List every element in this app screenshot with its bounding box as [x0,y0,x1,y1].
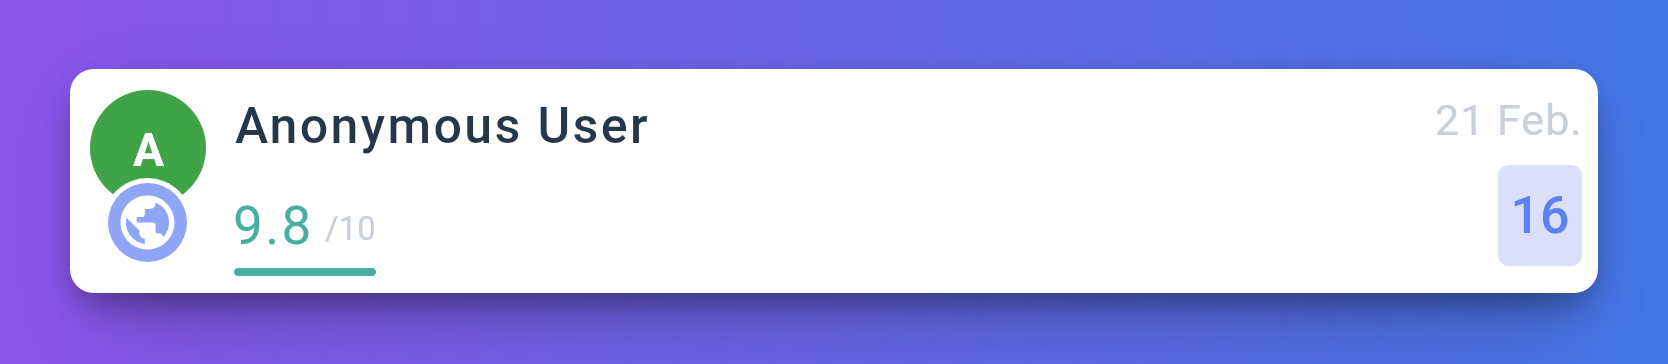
button[interactable]: 16 [1498,165,1582,266]
staticText: /10 [325,209,376,248]
staticText: 9.8 [233,195,314,257]
staticText: Anonymous User [235,97,651,156]
other: Public visibility [103,178,192,267]
button[interactable]: A [70,69,1598,293]
staticText: 21 Feb. [1435,95,1583,145]
staticText: A [133,123,164,177]
staticText: 16 [1510,185,1570,246]
